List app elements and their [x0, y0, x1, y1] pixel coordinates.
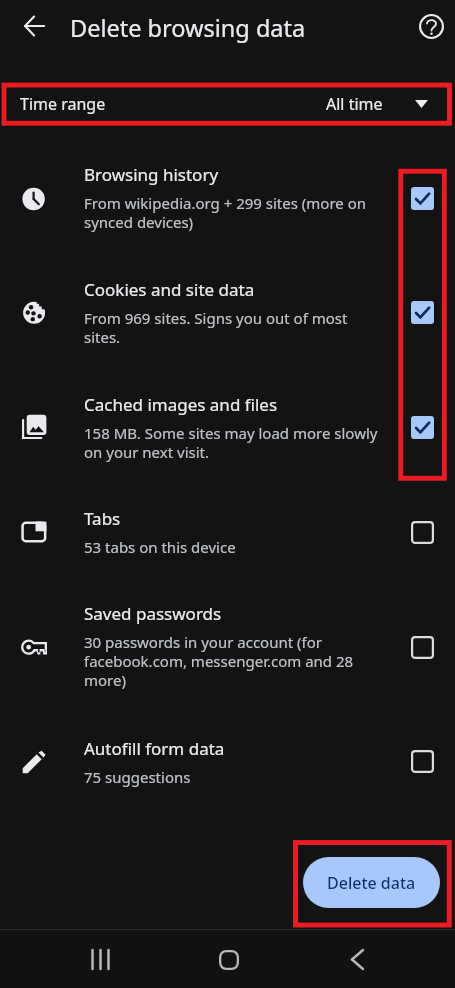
button[interactable]: Saved passwords: [400, 625, 444, 669]
button[interactable]: Cached images and files: [400, 405, 444, 449]
staticText: Cached images and files: [84, 393, 278, 416]
staticText: Tabs: [84, 507, 121, 530]
staticText: 30 passwords in your account (for facebo…: [84, 632, 380, 690]
staticText: 75 suggestions: [84, 767, 191, 787]
staticText: From wikipedia.org + 299 sites (more on …: [84, 193, 380, 232]
button[interactable]: [0, 375, 455, 479]
button[interactable]: [0, 260, 455, 364]
button[interactable]: [0, 82, 455, 125]
button[interactable]: Delete data: [303, 857, 440, 908]
button[interactable]: Back: [14, 6, 54, 46]
button[interactable]: Home: [197, 929, 261, 988]
staticText: Saved passwords: [84, 602, 222, 625]
staticText: Delete browsing data: [70, 12, 306, 44]
button[interactable]: Back: [325, 929, 389, 988]
button[interactable]: Recent apps: [68, 929, 132, 988]
button[interactable]: [0, 709, 455, 813]
button[interactable]: [0, 146, 455, 250]
staticText: 158 MB. Some sites may load more slowly …: [84, 423, 380, 462]
button[interactable]: [0, 595, 455, 699]
button[interactable]: Autofill form data: [400, 739, 444, 783]
staticText: All time: [326, 93, 383, 115]
button[interactable]: [0, 480, 455, 584]
button[interactable]: Help: [411, 6, 451, 46]
staticText: Browsing history: [84, 163, 219, 186]
staticText: From 969 sites. Signs you out of most si…: [84, 308, 380, 347]
button[interactable]: Cookies and site data: [400, 290, 444, 334]
button[interactable]: Tabs: [400, 510, 444, 554]
staticText: Delete data: [327, 872, 416, 894]
staticText: Time range: [20, 93, 106, 115]
staticText: Autofill form data: [84, 737, 225, 760]
button[interactable]: Browsing history: [400, 176, 444, 220]
staticText: Cookies and site data: [84, 278, 255, 301]
staticText: 53 tabs on this device: [84, 537, 236, 557]
